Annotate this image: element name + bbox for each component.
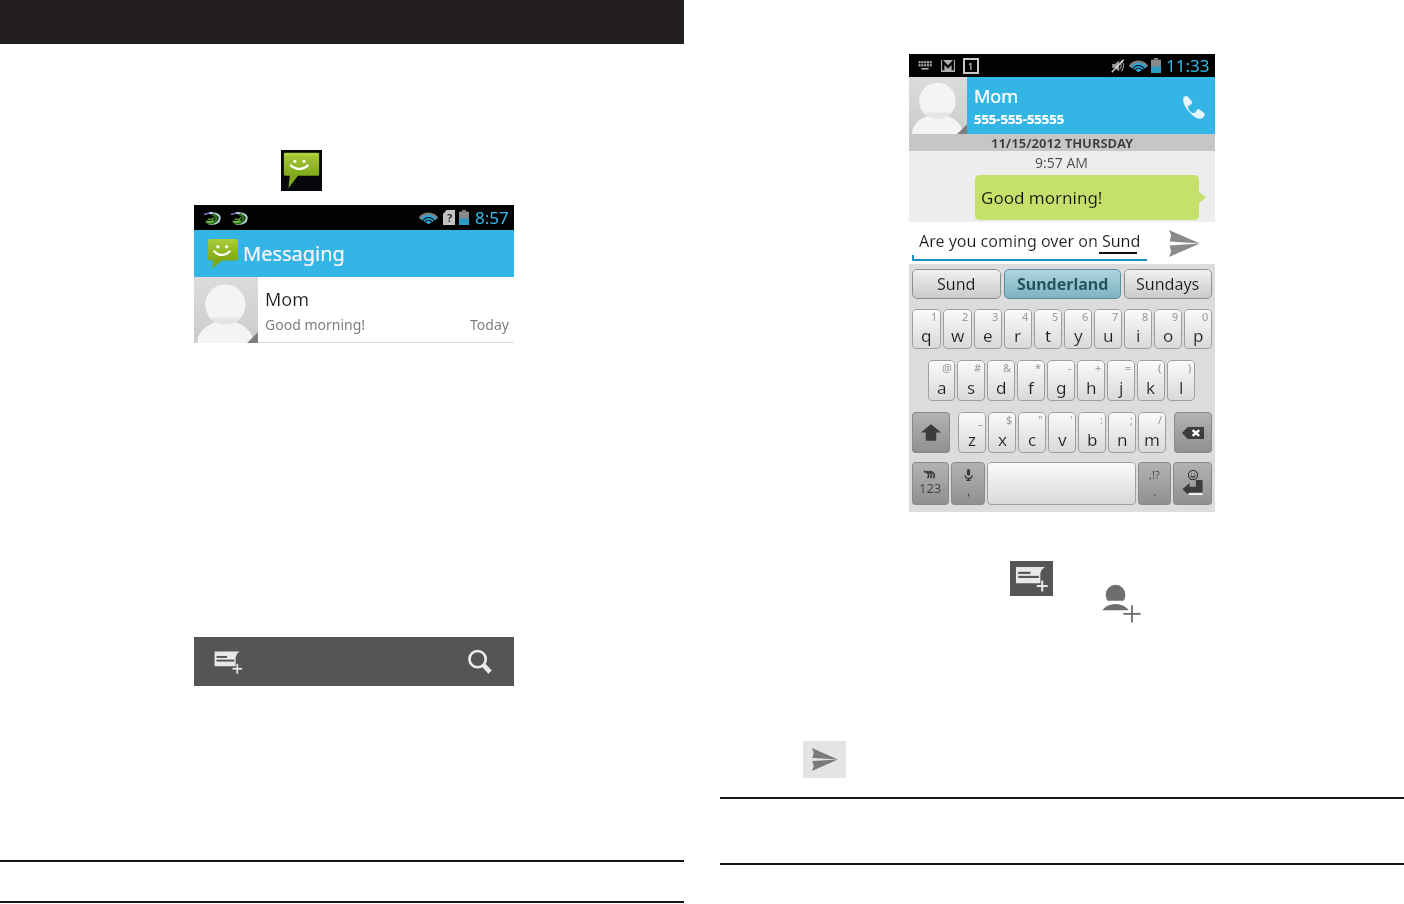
staticText: s [967, 376, 976, 399]
button[interactable]: Add contact [1100, 585, 1142, 623]
staticText: h [1086, 376, 1097, 399]
staticText: 0 [1202, 309, 1209, 324]
button[interactable]: 0 [1184, 309, 1212, 349]
button[interactable]: Punctuation [1138, 462, 1171, 505]
staticText: $ [1006, 412, 1013, 427]
staticText: r [1014, 324, 1022, 347]
button[interactable]: Backspace [1174, 412, 1212, 453]
button[interactable]: 7 [1094, 309, 1122, 349]
button[interactable]: 1 [912, 309, 941, 349]
button[interactable]: " [1018, 412, 1046, 453]
button[interactable]: Call [1167, 77, 1215, 134]
button[interactable]: Voice input [951, 462, 985, 505]
button[interactable]: - [1047, 360, 1075, 401]
button[interactable]: 9 [1154, 309, 1182, 349]
staticText: x [998, 428, 1007, 451]
staticText: 1 [968, 60, 974, 72]
button[interactable]: Space [987, 462, 1136, 505]
staticText: 8:57 [475, 206, 509, 229]
button[interactable]: 2 [943, 309, 972, 349]
button[interactable]: Good morning! [975, 175, 1206, 220]
staticText: Sund [937, 273, 976, 295]
button[interactable]: @ [928, 360, 955, 401]
button[interactable]: 8 [1124, 309, 1152, 349]
button[interactable]: Sund [912, 269, 1001, 299]
staticText: ? [447, 210, 453, 225]
staticText: . [1153, 482, 1157, 500]
staticText: 7 [1112, 309, 1119, 324]
button[interactable]: Numbers [912, 462, 949, 505]
button[interactable]: 5 [1034, 309, 1062, 349]
staticText: a [937, 376, 947, 399]
staticText: 11:33 [1166, 54, 1210, 77]
staticText: / [1158, 412, 1163, 427]
staticText: ( [1158, 360, 1162, 375]
staticText: & [1003, 360, 1012, 375]
staticText: - [1068, 360, 1072, 375]
button[interactable]: + [1077, 360, 1105, 401]
staticText: 6 [1082, 309, 1089, 324]
staticText: 11/15/2012 THURSDAY [991, 134, 1134, 151]
staticText: k [1146, 376, 1156, 399]
staticText: : [1100, 412, 1103, 427]
staticText: 4 [1022, 309, 1029, 324]
button[interactable]: # [957, 360, 985, 401]
button[interactable]: / [1138, 412, 1166, 453]
button[interactable]: Shift [912, 412, 950, 453]
staticText: Mom [265, 287, 310, 312]
staticText: w [951, 324, 965, 347]
button[interactable]: ; [1108, 412, 1136, 453]
staticText: p [1193, 324, 1204, 347]
button[interactable]: Send [1153, 222, 1215, 264]
staticText: 2 [962, 309, 969, 324]
button[interactable]: New message [1010, 561, 1053, 596]
staticText: y [1074, 324, 1083, 347]
staticText: 555-555-55555 [974, 110, 1065, 128]
staticText: n [1117, 428, 1128, 451]
staticText: m [1144, 428, 1160, 451]
button[interactable]: 6 [1064, 309, 1092, 349]
button[interactable]: : [1078, 412, 1106, 453]
staticText: z [968, 428, 976, 451]
button[interactable]: Search [446, 637, 514, 686]
staticText: Sunderland [1017, 273, 1109, 295]
staticText: c [1028, 428, 1037, 451]
button[interactable]: Messaging [194, 230, 514, 277]
button[interactable]: ) [1167, 360, 1195, 401]
button[interactable]: 3 [974, 309, 1002, 349]
staticText: g [1056, 376, 1067, 399]
staticText: 1 [931, 309, 938, 324]
button[interactable]: _ [958, 412, 986, 453]
button[interactable]: Mom [909, 77, 1215, 134]
staticText: = [1125, 360, 1132, 375]
staticText: # [974, 360, 982, 375]
staticText: d [996, 376, 1007, 399]
button[interactable]: ' [1048, 412, 1076, 453]
staticText: Messaging [243, 240, 345, 267]
staticText: o [1163, 324, 1174, 347]
button[interactable]: & [987, 360, 1015, 401]
staticText: 9:57 AM [1035, 153, 1089, 172]
button[interactable]: Mom [194, 277, 514, 343]
staticText: i [1136, 324, 1141, 347]
button[interactable]: Sunderland [1004, 269, 1121, 299]
staticText: + [1095, 360, 1102, 375]
staticText: 8 [1142, 309, 1149, 324]
button[interactable]: New message [194, 637, 262, 686]
staticText: " [1038, 412, 1043, 427]
button[interactable]: * [1017, 360, 1045, 401]
staticText: Are you coming over on Sund [919, 230, 1141, 252]
staticText: Mom [974, 84, 1019, 109]
button[interactable]: ( [1137, 360, 1165, 401]
button[interactable]: $ [988, 412, 1016, 453]
staticText: * [1035, 360, 1042, 375]
button[interactable]: Send [803, 741, 846, 778]
staticText: @ [942, 360, 952, 375]
button[interactable]: 4 [1004, 309, 1032, 349]
button[interactable]: Sundays [1124, 269, 1212, 299]
staticText: q [921, 324, 932, 347]
button[interactable]: = [1107, 360, 1135, 401]
staticText: Good morning! [981, 186, 1103, 209]
staticText: 5 [1052, 309, 1059, 324]
button[interactable]: Enter [1173, 462, 1212, 505]
